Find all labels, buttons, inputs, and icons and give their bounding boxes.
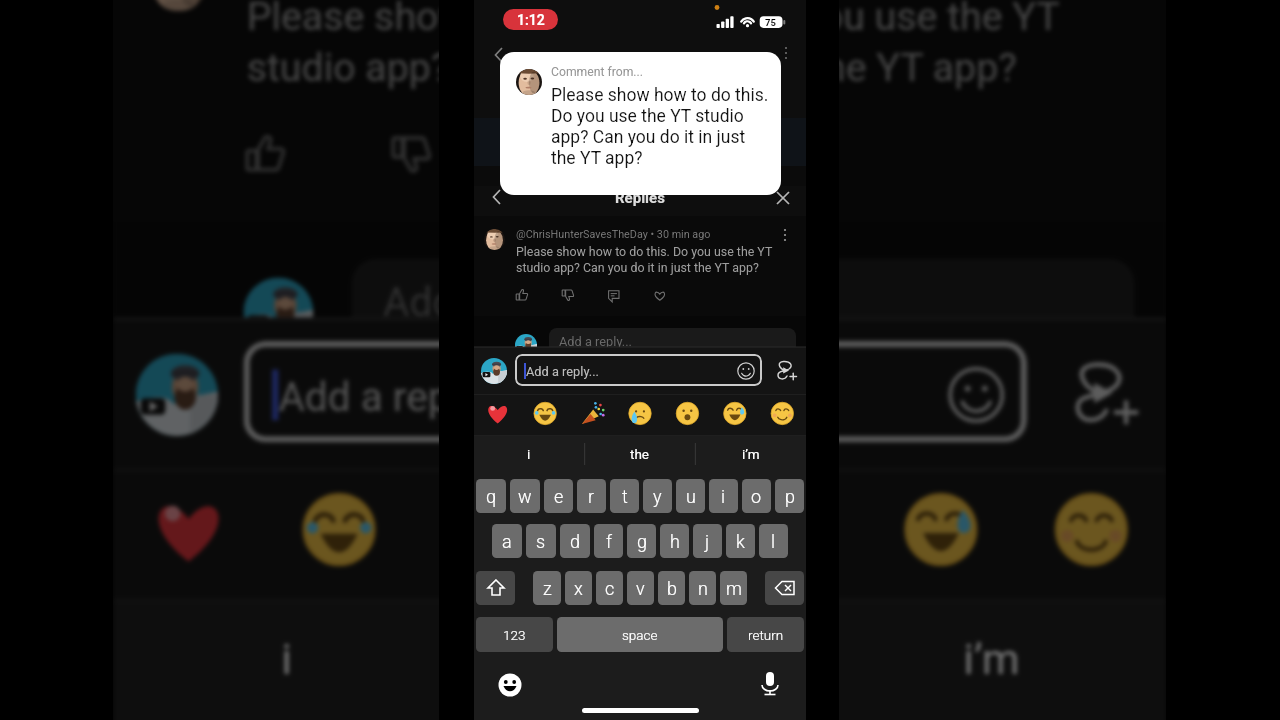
staticText: 123 bbox=[503, 627, 526, 643]
button[interactable]: Emoji bbox=[737, 362, 755, 380]
button[interactable]: space bbox=[557, 617, 723, 652]
button[interactable]: Heart bbox=[681, 132, 735, 185]
button[interactable]: g bbox=[627, 524, 656, 558]
button[interactable]: Face with open mouth bbox=[719, 471, 868, 601]
button[interactable]: v bbox=[627, 571, 654, 605]
button[interactable]: Dislike bbox=[389, 132, 443, 185]
staticText: q bbox=[486, 486, 497, 507]
button[interactable]: y bbox=[643, 479, 672, 513]
button[interactable]: i bbox=[113, 601, 462, 715]
button[interactable]: w bbox=[510, 479, 540, 513]
button[interactable]: u bbox=[676, 479, 705, 513]
staticText: o bbox=[751, 486, 762, 507]
button[interactable]: Close bbox=[772, 187, 794, 209]
button[interactable]: Like bbox=[515, 288, 532, 305]
button[interactable]: s bbox=[526, 524, 556, 558]
staticText: l bbox=[771, 531, 776, 552]
button[interactable]: Smiling face bbox=[1017, 471, 1166, 601]
button[interactable]: x bbox=[565, 571, 592, 605]
button[interactable]: q bbox=[476, 479, 506, 513]
button[interactable]: f bbox=[594, 524, 623, 558]
button[interactable]: Heart bbox=[653, 288, 670, 305]
staticText: Please show how to do this. Do you use t… bbox=[516, 244, 775, 275]
button[interactable]: o bbox=[742, 479, 771, 513]
staticText: the bbox=[608, 633, 672, 684]
button[interactable]: z bbox=[533, 571, 561, 605]
staticText: Replies bbox=[615, 189, 665, 207]
button[interactable]: Shift bbox=[476, 571, 515, 605]
button[interactable]: 1:12 bbox=[503, 9, 558, 30]
button[interactable]: d bbox=[560, 524, 590, 558]
button[interactable]: Party popper bbox=[418, 471, 570, 601]
button[interactable]: Party popper bbox=[570, 395, 618, 436]
button[interactable]: n bbox=[689, 571, 716, 605]
button[interactable]: More options bbox=[776, 226, 794, 244]
button[interactable]: Reply bbox=[607, 288, 624, 305]
staticText: f bbox=[606, 531, 612, 552]
staticText: Comment from... bbox=[551, 65, 643, 79]
button[interactable]: Create clip bbox=[1065, 354, 1147, 436]
button[interactable]: Dictate bbox=[756, 670, 784, 698]
button[interactable]: Red heart bbox=[113, 471, 266, 601]
staticText: d bbox=[570, 531, 581, 552]
staticText: e bbox=[554, 486, 564, 507]
button[interactable]: Back bbox=[488, 44, 510, 66]
button[interactable]: Face with open mouth bbox=[665, 395, 712, 436]
button[interactable]: 123 bbox=[476, 617, 553, 652]
button[interactable]: m bbox=[720, 571, 747, 605]
button[interactable]: t bbox=[610, 479, 639, 513]
button[interactable]: i bbox=[709, 479, 738, 513]
staticText: n bbox=[698, 578, 708, 599]
button[interactable]: j bbox=[693, 524, 722, 558]
button[interactable]: Back bbox=[486, 186, 508, 208]
button[interactable]: Crying face bbox=[570, 471, 719, 601]
button[interactable]: Grinning face with sweat bbox=[868, 471, 1017, 601]
button[interactable]: Smiling face bbox=[759, 395, 806, 436]
button[interactable]: @ChrisHunterSavesTheDay • 30 min ago bbox=[113, 0, 1166, 220]
button[interactable]: p bbox=[775, 479, 804, 513]
button[interactable]: i’m bbox=[814, 601, 1166, 715]
staticText: h bbox=[670, 531, 680, 552]
button[interactable]: Backspace bbox=[765, 571, 804, 605]
button[interactable]: c bbox=[596, 571, 623, 605]
staticText: r bbox=[588, 486, 595, 507]
staticText: b bbox=[667, 578, 677, 599]
staticText: p bbox=[785, 486, 795, 507]
staticText: m bbox=[726, 578, 742, 599]
button[interactable]: k bbox=[726, 524, 755, 558]
button[interactable]: i bbox=[474, 436, 584, 472]
button[interactable]: More bbox=[777, 44, 795, 62]
button[interactable]: Like bbox=[243, 132, 297, 185]
button[interactable]: Grinning face with sweat bbox=[712, 395, 759, 436]
button[interactable]: Emoji keyboard bbox=[498, 673, 522, 697]
button[interactable]: Dislike bbox=[561, 288, 578, 305]
button[interactable]: Crying face bbox=[618, 395, 665, 436]
button[interactable]: Reply bbox=[535, 132, 589, 185]
staticText: t bbox=[622, 486, 628, 507]
staticText: Please show how to do this. Do you use t… bbox=[551, 85, 769, 169]
button[interactable]: return bbox=[727, 617, 804, 652]
staticText: 1:12 bbox=[517, 12, 545, 28]
button[interactable]: Emoji bbox=[948, 366, 1005, 423]
button[interactable]: Red heart bbox=[474, 395, 522, 436]
button[interactable]: h bbox=[660, 524, 689, 558]
button[interactable]: Add a reply... bbox=[243, 341, 1027, 442]
button[interactable]: Add a reply... bbox=[351, 258, 1135, 341]
button[interactable]: @ChrisHunterSavesTheDay • 30 min ago bbox=[474, 216, 806, 316]
button[interactable]: Face with tears of joy bbox=[266, 471, 418, 601]
button[interactable]: Create clip bbox=[774, 358, 800, 384]
button[interactable]: Face with tears of joy bbox=[522, 395, 570, 436]
button[interactable]: Add a reply... bbox=[549, 328, 796, 354]
button[interactable]: i’m bbox=[695, 436, 806, 472]
button[interactable]: a bbox=[492, 524, 522, 558]
button[interactable]: r bbox=[577, 479, 606, 513]
button[interactable]: l bbox=[759, 524, 788, 558]
staticText: @ChrisHunterSavesTheDay • 30 min ago bbox=[516, 228, 711, 241]
button[interactable]: Comment from... bbox=[500, 52, 781, 195]
button[interactable]: the bbox=[584, 436, 695, 472]
button[interactable]: the bbox=[462, 601, 814, 715]
staticText: Add a reply... bbox=[383, 277, 615, 325]
button[interactable]: b bbox=[658, 571, 685, 605]
button[interactable]: e bbox=[544, 479, 573, 513]
button[interactable]: Add a reply... bbox=[515, 354, 762, 386]
